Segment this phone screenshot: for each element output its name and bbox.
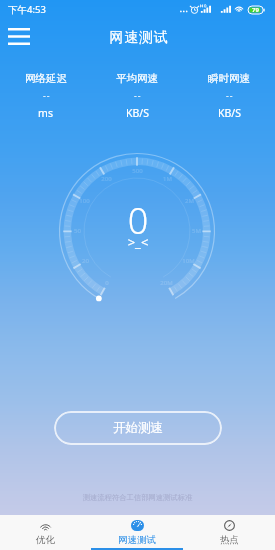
staticText: 热点 [220, 534, 239, 546]
staticText: KB/S [218, 106, 241, 120]
staticText: 10M [182, 257, 195, 265]
staticText: 500 [132, 167, 143, 175]
button[interactable]: 网速测试 [91, 515, 183, 550]
staticText: 平均网速 [116, 72, 158, 85]
staticText: KB/S [126, 106, 149, 120]
staticText: 下午4:53 [8, 3, 46, 16]
staticText: 开始测速 [113, 420, 163, 436]
staticText: 20M [160, 279, 173, 287]
button[interactable]: Menu [2, 19, 36, 53]
staticText: - - [43, 90, 49, 102]
staticText: 网络延迟 [25, 72, 67, 85]
staticText: - - [226, 90, 232, 102]
button[interactable]: 优化 [0, 515, 91, 550]
staticText: >_< [88, 233, 188, 251]
staticText: 测速流程符合工信部网速测试标准 [0, 493, 275, 502]
staticText: 79 [252, 6, 259, 14]
staticText: ms [38, 106, 53, 120]
button[interactable]: 开始测速 [54, 411, 222, 445]
staticText: 网速测试 [118, 534, 156, 546]
staticText: 100 [79, 197, 90, 205]
staticText: 优化 [36, 534, 55, 546]
staticText: 网速测试 [109, 29, 169, 47]
button[interactable]: 热点 [183, 515, 275, 550]
staticText: 20 [82, 257, 89, 265]
staticText: 0 [105, 279, 109, 287]
staticText: 5M [192, 227, 201, 235]
staticText: 200 [101, 175, 112, 183]
staticText: - - [134, 90, 140, 102]
staticText: 0 [88, 196, 188, 245]
staticText: 瞬时网速 [208, 72, 250, 85]
staticText: 1M [163, 175, 172, 183]
staticText: 50 [74, 227, 81, 235]
staticText: 2M [185, 197, 194, 205]
